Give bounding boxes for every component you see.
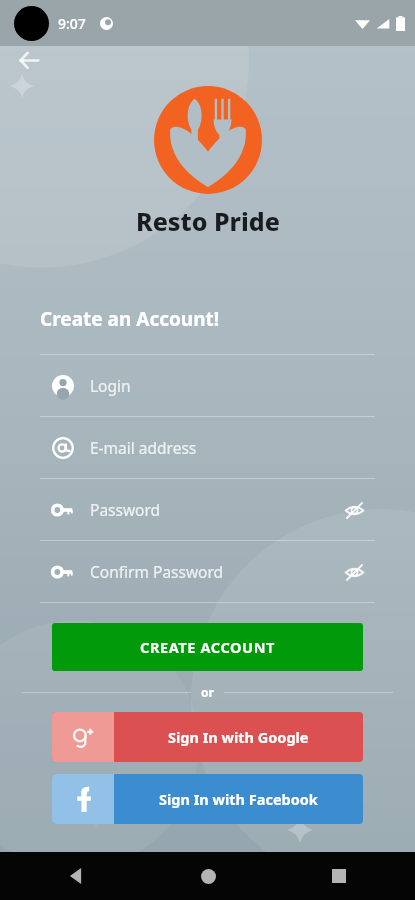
staticText: Create an Account! bbox=[40, 306, 220, 332]
button[interactable]: Back bbox=[58, 858, 94, 894]
staticText: Sign In with Facebook bbox=[159, 789, 318, 809]
staticText: Sign In with Google bbox=[168, 727, 309, 747]
button[interactable]: Login bbox=[40, 355, 375, 416]
staticText: or bbox=[201, 684, 214, 700]
button[interactable]: E-mail address bbox=[40, 417, 375, 478]
staticText: Resto Pride bbox=[136, 204, 280, 238]
staticText: 9:07 bbox=[58, 14, 86, 33]
button[interactable]: Home bbox=[190, 858, 226, 894]
button[interactable]: CREATE ACCOUNT bbox=[52, 623, 363, 671]
button[interactable]: Recent apps bbox=[321, 858, 357, 894]
button[interactable]: Sign In with Facebook bbox=[52, 774, 363, 824]
button[interactable]: Confirm Password bbox=[40, 541, 375, 602]
button[interactable]: Password bbox=[40, 479, 375, 540]
button[interactable]: Show password bbox=[337, 555, 371, 589]
button[interactable]: Back bbox=[18, 49, 40, 71]
button[interactable]: Sign In with Google bbox=[52, 712, 363, 762]
button[interactable]: Show password bbox=[337, 493, 371, 527]
staticText: Login bbox=[90, 375, 375, 396]
staticText: CREATE ACCOUNT bbox=[140, 637, 275, 657]
staticText: Password bbox=[90, 499, 337, 520]
staticText: E-mail address bbox=[90, 437, 375, 458]
staticText: Confirm Password bbox=[90, 561, 337, 582]
